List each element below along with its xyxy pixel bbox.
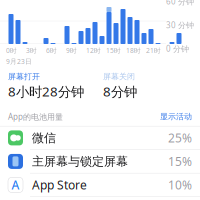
button[interactable]: A [0, 173, 200, 197]
staticText: 3时 [26, 46, 37, 55]
staticText: 9月23日 [6, 57, 32, 66]
staticText: 9时 [66, 46, 77, 55]
staticText: 8小时28分钟 [8, 82, 84, 100]
staticText: App的电池用量 [8, 111, 63, 122]
button[interactable]: 主屏幕与锁定屏幕 [0, 150, 200, 173]
staticText: 25% [168, 130, 192, 146]
button[interactable]: 微信 [0, 126, 200, 150]
staticText: 6时 [46, 46, 57, 55]
staticText: 15% [168, 153, 192, 169]
staticText: 12时 [86, 46, 101, 55]
staticText: 8分钟 [103, 82, 137, 100]
staticText: 0 分钟 [166, 43, 189, 54]
staticText: 18时 [126, 46, 141, 55]
staticText: A [11, 177, 19, 193]
staticText: App Store [32, 177, 87, 193]
staticText: 0时 [6, 46, 17, 55]
staticText: 微信 [32, 130, 56, 145]
staticText: 21时 [146, 46, 161, 55]
staticText: 屏幕关闭 [103, 72, 135, 81]
button[interactable]: 显示活动 [160, 112, 192, 121]
staticText: 60 分钟 [166, 0, 194, 7]
staticText: 30 分钟 [166, 20, 194, 30]
staticText: 主屏幕与锁定屏幕 [32, 154, 128, 169]
staticText: 屏幕打开 [8, 72, 40, 81]
staticText: 10% [168, 177, 192, 193]
staticText: 显示活动 [160, 112, 192, 121]
staticText: 15时 [106, 46, 121, 55]
